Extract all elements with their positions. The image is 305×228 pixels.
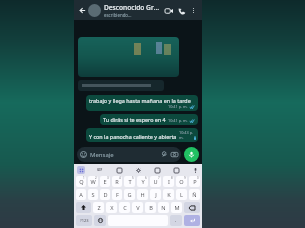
staticText: 9 xyxy=(184,176,186,180)
button[interactable]: K xyxy=(163,189,174,200)
staticText: 10:41 p. m. xyxy=(168,104,188,109)
staticText: 4 xyxy=(119,176,121,180)
button[interactable]: Q xyxy=(76,176,86,187)
staticText: X xyxy=(110,204,114,212)
button[interactable]: G xyxy=(124,189,135,200)
staticText: J xyxy=(155,191,157,199)
button[interactable]: clipboard xyxy=(172,166,180,174)
button[interactable]: D xyxy=(100,189,110,200)
button[interactable]: P xyxy=(189,176,200,187)
button[interactable]: Z xyxy=(93,202,104,213)
staticText: B xyxy=(149,204,153,212)
staticText: 0 xyxy=(197,176,199,180)
staticText: C xyxy=(123,204,127,212)
staticText: D xyxy=(103,191,108,199)
button[interactable]: O xyxy=(176,176,187,187)
button[interactable]: Video call xyxy=(162,4,175,17)
button[interactable]: B xyxy=(145,202,156,213)
button[interactable]: sticker xyxy=(115,166,123,174)
button[interactable]: Attach xyxy=(161,151,168,158)
staticText: . xyxy=(175,217,177,224)
button[interactable]: Camera xyxy=(171,151,178,158)
button[interactable]: trabajo y llega hasta mañana en la tarde xyxy=(86,95,198,111)
staticText: escribiendo… xyxy=(104,12,132,18)
button[interactable]: Period xyxy=(170,215,182,226)
staticText: K xyxy=(167,191,171,199)
staticText: 8 xyxy=(171,176,173,180)
button[interactable]: Call xyxy=(175,4,188,17)
button[interactable]: settings xyxy=(134,166,142,174)
staticText: Y con la panocha caliente y abierta xyxy=(89,133,177,140)
button[interactable]: X xyxy=(106,202,117,213)
staticText: O xyxy=(179,178,184,186)
button[interactable]: Back xyxy=(77,5,88,16)
button[interactable]: V xyxy=(132,202,143,213)
staticText: F xyxy=(116,191,119,199)
staticText: Mensaje xyxy=(90,151,114,159)
button[interactable]: F xyxy=(112,189,122,200)
button[interactable]: Tu dirás si te espero en 4 xyxy=(100,114,198,125)
staticText: R xyxy=(115,178,119,186)
button[interactable]: mic xyxy=(191,166,199,174)
button[interactable]: Gboard menu xyxy=(77,166,85,174)
button[interactable]: I xyxy=(163,176,174,187)
staticText: Desconocido Gru… xyxy=(104,3,162,12)
staticText: trabajo y llega hasta mañana en la tarde xyxy=(89,97,191,104)
button[interactable]: W xyxy=(88,176,98,187)
staticText: L xyxy=(180,191,183,199)
button[interactable]: Backspace xyxy=(184,202,200,213)
staticText: 2 xyxy=(95,176,97,180)
button[interactable]: T xyxy=(124,176,135,187)
staticText: W xyxy=(90,178,96,186)
staticText: ?123 xyxy=(80,218,89,223)
staticText: G xyxy=(127,191,132,199)
button[interactable]: Desconocido Gru… xyxy=(104,3,162,18)
staticText: 3 xyxy=(107,176,109,180)
staticText: 1 xyxy=(83,176,85,180)
button[interactable]: M xyxy=(171,202,182,213)
staticText: Q xyxy=(79,178,84,186)
button[interactable]: Emoji xyxy=(94,215,106,226)
button[interactable] xyxy=(78,80,164,91)
button[interactable]: Voice message xyxy=(184,147,199,162)
staticText: M xyxy=(174,204,180,212)
button[interactable]: L xyxy=(176,189,187,200)
button[interactable]: Shift xyxy=(76,202,91,213)
staticText: GIF xyxy=(97,168,103,172)
button[interactable]: A xyxy=(76,189,86,200)
button[interactable] xyxy=(78,37,179,77)
button[interactable]: Ñ xyxy=(189,189,200,200)
staticText: Ñ xyxy=(192,191,197,199)
button[interactable]: R xyxy=(112,176,122,187)
staticText: U xyxy=(153,178,158,186)
staticText: 10:41 p. m. xyxy=(168,118,188,123)
staticText: A xyxy=(79,191,83,199)
button[interactable]: translate xyxy=(153,166,161,174)
staticText: E xyxy=(103,178,107,186)
button[interactable]: U xyxy=(150,176,161,187)
staticText: 5 xyxy=(132,176,134,180)
staticText: N xyxy=(161,204,166,212)
staticText: T xyxy=(128,178,132,186)
button[interactable]: C xyxy=(119,202,130,213)
button[interactable]: S xyxy=(88,189,98,200)
staticText: 7 xyxy=(158,176,160,180)
button[interactable]: Mensaje xyxy=(77,147,181,162)
staticText: Y xyxy=(141,178,145,186)
button[interactable]: N xyxy=(158,202,169,213)
button[interactable]: GIF xyxy=(96,166,104,174)
staticText: 6 xyxy=(145,176,147,180)
staticText: I xyxy=(168,178,170,186)
button[interactable]: Y xyxy=(137,176,148,187)
button[interactable]: H xyxy=(137,189,148,200)
button[interactable]: Numbers xyxy=(76,215,92,226)
button[interactable]: More options xyxy=(188,5,199,16)
button[interactable]: E xyxy=(100,176,110,187)
staticText: H xyxy=(140,191,145,199)
button[interactable]: Y con la panocha caliente y abierta xyxy=(86,128,198,142)
button[interactable]: J xyxy=(150,189,161,200)
staticText: S xyxy=(91,191,95,199)
staticText: 10:43 p. m. xyxy=(179,130,195,140)
button[interactable]: Enter xyxy=(184,215,200,226)
